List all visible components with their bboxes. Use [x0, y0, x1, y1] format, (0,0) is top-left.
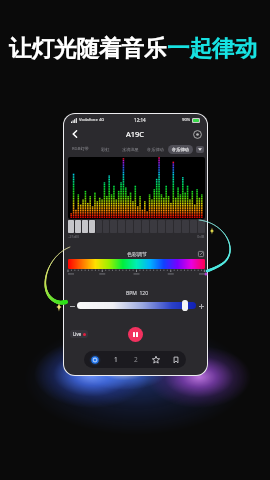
button[interactable]: RGB灯带 [68, 146, 93, 152]
button[interactable]: 1 [105, 351, 126, 368]
button[interactable]: Increase [197, 302, 205, 310]
staticText: 2 [134, 355, 138, 364]
staticText: 彩虹 [101, 147, 110, 152]
button[interactable]: Edit [197, 250, 205, 258]
staticText: 色彩调节 [127, 251, 147, 257]
staticText: 12:14 [134, 117, 146, 123]
staticText: Vodafone 4G [79, 117, 105, 123]
staticText: 水滴流星 [122, 147, 139, 152]
button[interactable]: 音乐律动 [168, 145, 193, 154]
button[interactable]: Pause [128, 327, 143, 342]
staticText: -25dB [68, 234, 79, 239]
staticText: RGB灯带 [72, 146, 89, 152]
button[interactable]: Decrease [68, 302, 76, 310]
staticText: A19C [126, 129, 145, 139]
button[interactable]: Live [70, 330, 88, 338]
button[interactable]: Settings [191, 128, 203, 140]
staticText: 音乐律动 [147, 147, 164, 152]
button[interactable]: More [196, 146, 204, 153]
button[interactable]: 水滴流星 [118, 147, 143, 152]
button[interactable]: Home [84, 351, 105, 368]
button[interactable]: 彩虹 [93, 147, 118, 152]
staticText: 0dB [197, 234, 205, 239]
staticText: 让灯光随着音乐 [9, 34, 167, 62]
button[interactable]: Bookmarks [166, 351, 186, 368]
staticText: 90% [182, 117, 191, 123]
staticText: 音乐律动 [172, 147, 189, 152]
staticText: 1 [114, 355, 118, 364]
staticText: 一起律动 [167, 34, 257, 62]
button[interactable]: 2 [126, 351, 146, 368]
button[interactable]: Favorites [146, 351, 166, 368]
button[interactable]: Back [68, 127, 82, 141]
staticText: Live [73, 331, 82, 337]
staticText: BPM 120 [126, 290, 148, 297]
button[interactable]: 音乐律动 [143, 147, 168, 152]
button[interactable] [182, 300, 188, 311]
